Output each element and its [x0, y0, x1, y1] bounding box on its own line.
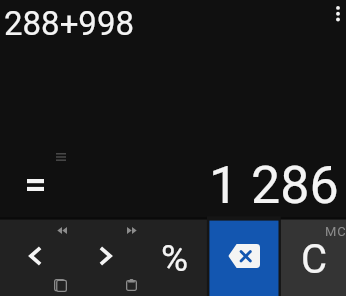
button[interactable]: Percent	[139, 219, 209, 296]
button[interactable]: Clear	[278, 219, 346, 296]
staticText: 1 286	[209, 155, 339, 216]
staticText: MC	[325, 224, 346, 239]
button[interactable]: Move cursor left	[0, 219, 70, 296]
button[interactable]: Move cursor right	[70, 219, 140, 296]
staticText: %	[161, 237, 189, 280]
button[interactable]: More options	[326, 0, 346, 27]
staticText: 288+998	[4, 4, 135, 43]
button[interactable]: Backspace	[209, 219, 279, 296]
staticText: C	[301, 236, 328, 283]
